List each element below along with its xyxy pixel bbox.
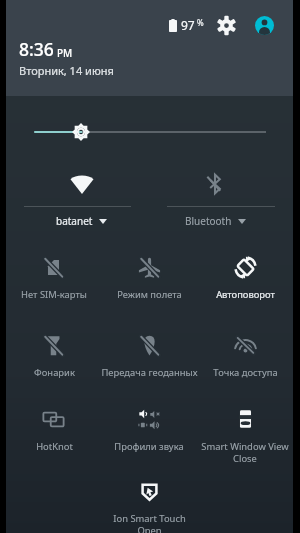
button[interactable]: User account bbox=[252, 13, 276, 37]
button[interactable]: Bluetooth bbox=[149, 162, 293, 256]
button[interactable]: Settings bbox=[214, 13, 238, 37]
staticText: Точка доступа bbox=[213, 366, 278, 379]
staticText: PM bbox=[57, 46, 73, 60]
button[interactable]: batanet bbox=[6, 162, 149, 256]
button[interactable]: Режим полета bbox=[101, 250, 197, 328]
button[interactable]: Передача геоданных bbox=[101, 328, 197, 402]
button[interactable]: Brightness bbox=[6, 96, 293, 170]
staticText: Нет SIM-карты bbox=[21, 288, 87, 301]
staticText: Режим полета bbox=[117, 288, 182, 301]
staticText: Bluetooth bbox=[185, 214, 232, 228]
staticText: 97 bbox=[181, 17, 195, 33]
button[interactable]: Нет SIM-карты bbox=[6, 250, 101, 328]
button[interactable]: Автоповорот bbox=[197, 250, 293, 328]
staticText: Ion Smart Touch Open bbox=[113, 512, 186, 533]
staticText: batanet bbox=[56, 214, 93, 228]
staticText: Профили звука bbox=[114, 440, 184, 453]
button[interactable]: Фонарик bbox=[6, 328, 101, 402]
staticText: Передача геоданных bbox=[101, 366, 198, 379]
staticText: Фонарик bbox=[34, 366, 75, 379]
button[interactable]: Профили звука bbox=[101, 402, 197, 474]
staticText: HotKnot bbox=[36, 440, 73, 453]
button[interactable]: Smart Window View Close bbox=[197, 402, 293, 474]
staticText: Smart Window View Close bbox=[201, 440, 289, 465]
staticText: 8:36 bbox=[19, 37, 54, 61]
staticText: Вторник, 14 июня bbox=[19, 63, 114, 78]
button[interactable]: Ion Smart Touch Open bbox=[101, 474, 197, 533]
button[interactable]: Точка доступа bbox=[197, 328, 293, 402]
staticText: Автоповорот bbox=[216, 288, 275, 301]
staticText: % bbox=[195, 17, 204, 28]
button[interactable]: HotKnot bbox=[6, 402, 101, 474]
